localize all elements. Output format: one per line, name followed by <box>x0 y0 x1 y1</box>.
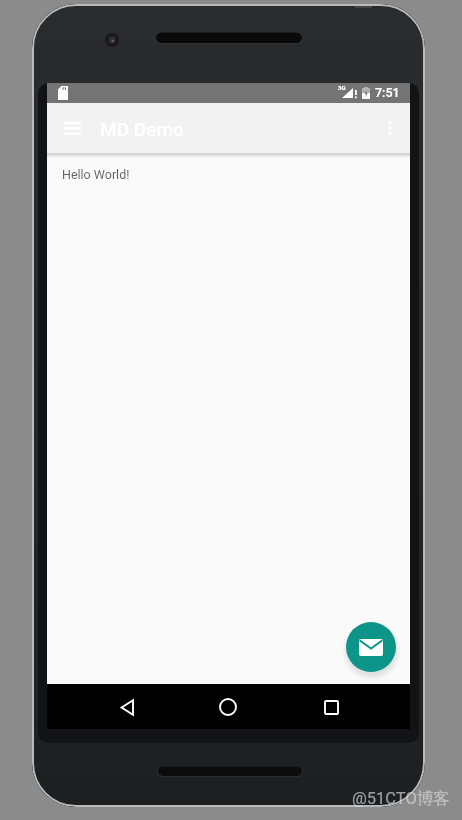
staticText: 7:51 <box>375 85 400 100</box>
staticText: @51CTO博客 <box>352 788 450 809</box>
staticText: 3G <box>338 84 346 91</box>
button[interactable] <box>346 622 396 672</box>
button[interactable] <box>209 688 247 726</box>
button[interactable] <box>108 688 146 726</box>
staticText: Hello World! <box>62 167 130 182</box>
staticText: MD Demo <box>100 118 184 140</box>
button[interactable] <box>312 688 350 726</box>
button[interactable] <box>53 113 91 143</box>
